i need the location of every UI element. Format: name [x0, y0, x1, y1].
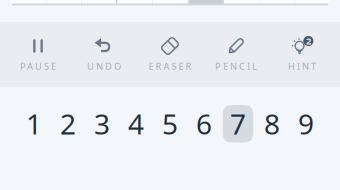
- button[interactable]: 9: [289, 105, 323, 142]
- button[interactable]: ERASER: [137, 22, 203, 87]
- staticText: PAUSE: [20, 60, 56, 72]
- button[interactable]: 8: [255, 105, 289, 142]
- staticText: 2: [306, 35, 311, 47]
- staticText: 5: [162, 105, 178, 142]
- button[interactable]: 2: [51, 105, 85, 142]
- button[interactable]: PENCIL: [203, 22, 269, 87]
- button[interactable]: 7: [221, 105, 255, 142]
- button[interactable]: 1: [17, 105, 51, 142]
- staticText: HINT: [288, 60, 316, 72]
- button[interactable]: 4: [119, 105, 153, 142]
- staticText: 2: [60, 105, 76, 142]
- staticText: 8: [264, 105, 280, 142]
- staticText: 7: [230, 105, 246, 142]
- button[interactable]: 6: [187, 105, 221, 142]
- button[interactable]: 2: [269, 22, 335, 87]
- button[interactable]: PAUSE: [5, 22, 71, 87]
- staticText: 6: [196, 105, 212, 142]
- staticText: 1: [26, 105, 42, 142]
- staticText: UNDO: [87, 60, 121, 72]
- staticText: 4: [128, 105, 144, 142]
- staticText: PENCIL: [215, 60, 257, 72]
- staticText: 9: [298, 105, 314, 142]
- button[interactable]: 3: [85, 105, 119, 142]
- button[interactable]: 5: [153, 105, 187, 142]
- staticText: 3: [94, 105, 110, 142]
- button[interactable]: UNDO: [71, 22, 137, 87]
- staticText: ERASER: [148, 60, 191, 72]
